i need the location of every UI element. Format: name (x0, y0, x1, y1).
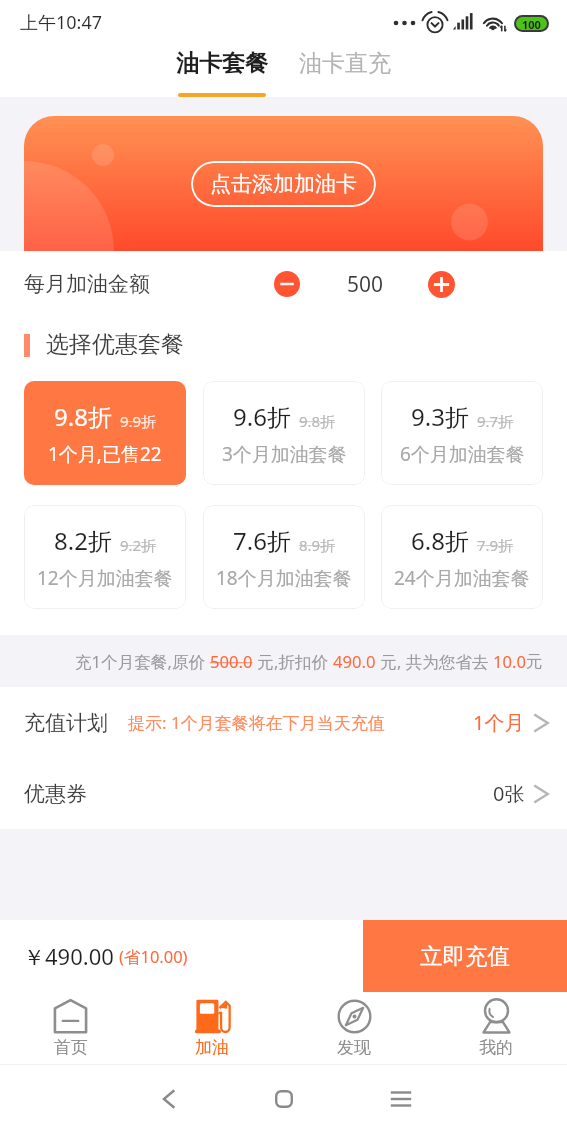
staticText: 上午10:47 (20, 10, 103, 35)
staticText: 9.2折 (120, 535, 157, 555)
button[interactable]: 点击添加加油卡 (191, 161, 376, 207)
staticText: 10.0 (493, 650, 526, 673)
staticText: 首页 (54, 1037, 88, 1058)
staticText: 7.9折 (477, 535, 514, 555)
staticText: 元, 共为您省去 (376, 650, 493, 673)
button[interactable]: 7.6折 (203, 505, 365, 609)
staticText: 9.9折 (120, 411, 157, 431)
staticText: 6个月加油套餐 (400, 441, 525, 467)
button[interactable]: 发现 (283, 992, 425, 1064)
staticText: 8.9折 (299, 535, 336, 555)
button[interactable]: Recent apps (381, 1079, 421, 1119)
staticText: 每月加油金额 (24, 271, 150, 297)
staticText: 立即充值 (420, 942, 510, 970)
staticText: 加油 (195, 1037, 229, 1058)
staticText: 12个月加油套餐 (37, 565, 173, 591)
staticText: 选择优惠套餐 (46, 330, 184, 359)
staticText: 9.8折 (299, 411, 336, 431)
staticText: 充1个月套餐,原价 (75, 650, 210, 673)
staticText: 18个月加油套餐 (216, 565, 352, 591)
button[interactable]: Decrease (274, 271, 300, 297)
button[interactable]: 9.6折 (203, 381, 365, 485)
staticText: 提示: 1个月套餐将在下月当天充值 (128, 711, 385, 734)
staticText: 油卡直充 (299, 49, 391, 78)
button[interactable]: 立即充值 (363, 920, 567, 992)
staticText: 1个月 (473, 709, 525, 736)
staticText: 9.3折 (411, 400, 469, 433)
staticText: 7.6折 (233, 524, 291, 557)
staticText: 24个月加油套餐 (394, 565, 530, 591)
button[interactable]: 9.8折 (24, 381, 186, 485)
staticText: 490.0 (333, 650, 376, 673)
staticText: 发现 (337, 1037, 371, 1058)
staticText: 优惠券 (24, 781, 87, 807)
button[interactable]: 我的 (425, 992, 567, 1064)
staticText: 3个月加油套餐 (222, 441, 347, 467)
staticText: 元 (526, 651, 543, 672)
button[interactable]: 6.8折 (381, 505, 543, 609)
button[interactable]: 首页 (0, 992, 141, 1064)
staticText: 9.8折 (54, 400, 112, 433)
staticText: 充值计划 (24, 710, 108, 736)
staticText: 100 (522, 17, 541, 30)
button[interactable]: 加油 (141, 992, 283, 1064)
staticText: (省10.00) (119, 945, 188, 968)
button[interactable]: 充值计划 (0, 687, 567, 758)
staticText: 500 (347, 270, 384, 299)
button[interactable]: Back (148, 1079, 188, 1119)
staticText: 元,折扣价 (253, 650, 333, 673)
button[interactable]: Home (264, 1079, 304, 1119)
staticText: 0张 (493, 780, 525, 807)
button[interactable]: 油卡套餐 (168, 45, 276, 97)
staticText: 500.0 (210, 650, 253, 673)
staticText: 9.6折 (233, 400, 291, 433)
staticText: 6.8折 (411, 524, 469, 557)
staticText: 点击添加加油卡 (210, 171, 357, 197)
button[interactable]: 优惠券 (0, 758, 567, 829)
button[interactable]: Increase (428, 271, 455, 298)
staticText: 1个月,已售22 (48, 441, 162, 467)
button[interactable]: 油卡直充 (291, 45, 399, 78)
staticText: 我的 (479, 1037, 513, 1058)
staticText: 8.2折 (54, 524, 112, 557)
staticText: 9.7折 (477, 411, 514, 431)
staticText: ￥490.00 (23, 941, 114, 971)
staticText: 油卡套餐 (176, 49, 268, 78)
button[interactable]: 8.2折 (24, 505, 186, 609)
button[interactable]: 9.3折 (381, 381, 543, 485)
